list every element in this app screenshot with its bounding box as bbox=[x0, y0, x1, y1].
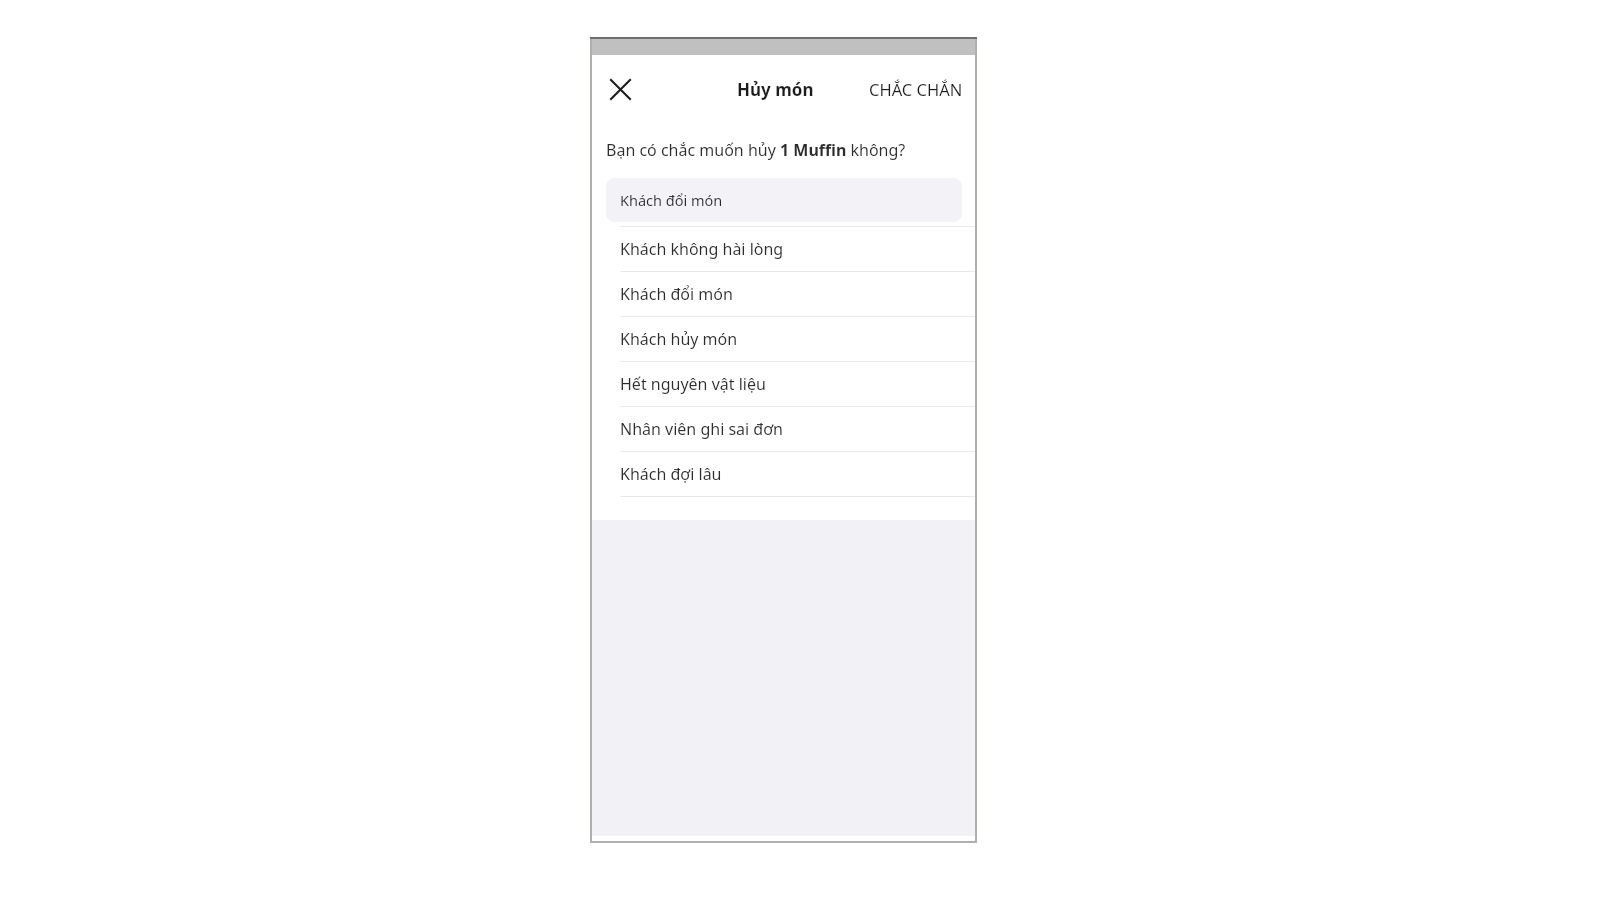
staticText: Khách đổi món bbox=[620, 190, 723, 210]
button[interactable]: Close bbox=[598, 67, 642, 111]
staticText: Nhân viên ghi sai đơn bbox=[620, 418, 783, 440]
staticText: Khách đổi món bbox=[620, 283, 733, 305]
staticText: Hủy món bbox=[737, 78, 814, 101]
button[interactable]: Khách đợi lâu bbox=[590, 452, 977, 496]
button[interactable]: Hết nguyên vật liệu bbox=[590, 362, 977, 406]
button[interactable]: Khách hủy món bbox=[590, 317, 977, 361]
button[interactable]: Khách đổi món bbox=[606, 178, 962, 222]
button: Hủy món bbox=[737, 78, 814, 101]
staticText: Khách không hài lòng bbox=[620, 238, 784, 260]
button[interactable]: Khách không hài lòng bbox=[590, 227, 977, 271]
staticText: Khách đợi lâu bbox=[620, 463, 722, 485]
button[interactable]: CHẮC CHẮN bbox=[861, 70, 971, 108]
staticText: Khách hủy món bbox=[620, 328, 738, 350]
staticText: Hết nguyên vật liệu bbox=[620, 373, 766, 395]
staticText: CHẮC CHẮN bbox=[869, 78, 963, 100]
button[interactable]: Khách đổi món bbox=[590, 272, 977, 316]
staticText: Bạn có chắc muốn hủy 1 Muffin không? bbox=[606, 139, 906, 161]
button[interactable]: Nhân viên ghi sai đơn bbox=[590, 407, 977, 451]
